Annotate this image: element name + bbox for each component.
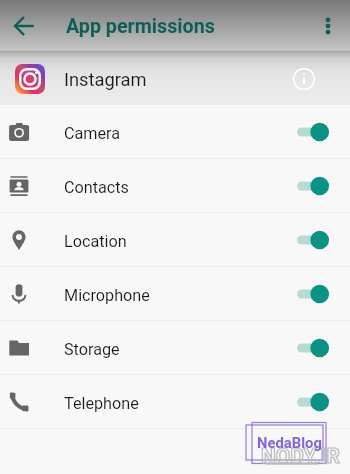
button[interactable]: Microphone — [0, 267, 350, 320]
button[interactable]: Camera — [0, 105, 350, 158]
button[interactable]: Telephone permission toggle — [297, 392, 329, 412]
staticText: Storage — [64, 340, 120, 359]
staticText: Microphone — [64, 286, 150, 305]
staticText: Telephone — [64, 394, 139, 413]
button[interactable]: Camera permission toggle — [297, 122, 329, 142]
staticText: Location — [64, 232, 127, 251]
button[interactable]: Storage permission toggle — [297, 338, 329, 358]
button[interactable]: Microphone permission toggle — [297, 284, 329, 304]
staticText: NedaBlog — [257, 434, 322, 451]
staticText: App permissions — [66, 15, 215, 38]
staticText: Contacts — [64, 178, 129, 197]
button[interactable]: More options — [314, 12, 342, 40]
button[interactable]: Location — [0, 213, 350, 266]
button[interactable]: Telephone — [0, 375, 350, 428]
button[interactable]: App info — [292, 67, 316, 91]
staticText: Camera — [64, 124, 121, 143]
button[interactable]: Storage — [0, 321, 350, 374]
button[interactable]: Back — [8, 10, 40, 42]
button[interactable]: Instagram — [0, 51, 350, 105]
button[interactable]: Location permission toggle — [297, 230, 329, 250]
button[interactable]: Contacts permission toggle — [297, 176, 329, 196]
button[interactable]: Contacts — [0, 159, 350, 212]
staticText: NODY.IR — [261, 444, 340, 469]
staticText: Instagram — [64, 69, 147, 90]
